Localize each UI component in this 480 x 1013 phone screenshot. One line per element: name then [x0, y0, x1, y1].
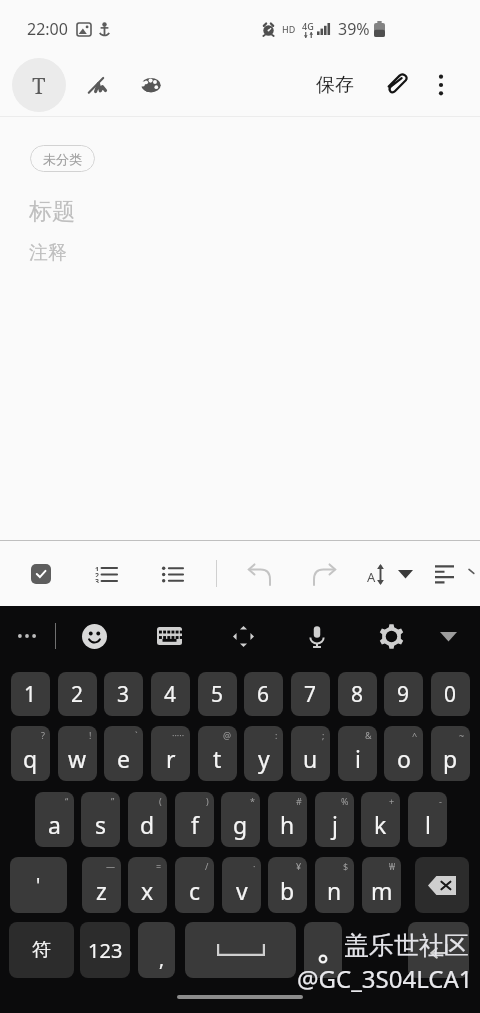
button[interactable]: +: [361, 792, 400, 847]
staticText: p: [443, 743, 458, 774]
button[interactable]: $: [315, 857, 354, 913]
button[interactable]: ”: [81, 792, 120, 847]
button[interactable]: Font size: [358, 554, 394, 594]
button[interactable]: (: [128, 792, 167, 847]
staticText: ₩: [389, 860, 396, 872]
button[interactable]: Numbers: [80, 922, 130, 978]
button[interactable]: 6: [244, 672, 283, 716]
staticText: #: [296, 795, 302, 807]
button[interactable]: *: [221, 792, 260, 847]
button[interactable]: Comma: [138, 922, 175, 978]
button[interactable]: 4: [151, 672, 190, 716]
button[interactable]: 0: [431, 672, 470, 716]
button[interactable]: Redo: [304, 554, 344, 594]
button[interactable]: Text mode: [12, 58, 66, 112]
staticText: v: [236, 875, 248, 906]
button[interactable]: :: [244, 726, 283, 781]
button[interactable]: &: [338, 726, 377, 781]
button[interactable]: Text style options: [389, 558, 421, 590]
button[interactable]: ): [175, 792, 214, 847]
button[interactable]: -: [408, 792, 447, 847]
button[interactable]: Voice input: [295, 614, 339, 658]
staticText: u: [303, 743, 318, 774]
staticText: ): [206, 795, 209, 807]
button[interactable]: ¥: [268, 857, 307, 913]
staticText: j: [332, 809, 338, 840]
staticText: ¥: [296, 860, 302, 872]
button[interactable]: /: [175, 857, 214, 913]
staticText: m: [371, 875, 393, 906]
staticText: 2: [95, 571, 100, 577]
button[interactable]: More options: [419, 63, 463, 107]
button[interactable]: `: [104, 726, 143, 781]
button[interactable]: Undo: [239, 554, 279, 594]
button[interactable]: 9: [384, 672, 423, 716]
button[interactable]: %: [315, 792, 354, 847]
button[interactable]: Hide keyboard: [426, 614, 470, 658]
button[interactable]: 3: [104, 672, 143, 716]
button[interactable]: ₩: [362, 857, 401, 913]
button[interactable]: Numbered list: [86, 554, 126, 594]
button[interactable]: Keyboard settings: [369, 614, 413, 658]
staticText: 注释: [29, 241, 67, 265]
button[interactable]: 2: [58, 672, 97, 716]
button[interactable]: Bulleted list: [152, 554, 192, 594]
button[interactable]: =: [128, 857, 167, 913]
staticText: $: [343, 860, 349, 872]
staticText: —: [106, 860, 116, 872]
staticText: :: [275, 729, 278, 741]
button[interactable]: Checklist: [21, 554, 61, 594]
button[interactable]: “: [35, 792, 74, 847]
button[interactable]: 5: [198, 672, 237, 716]
button[interactable]: Space: [185, 922, 296, 978]
staticText: b: [280, 875, 295, 906]
staticText: 保存: [316, 73, 354, 97]
staticText: 6: [257, 680, 270, 709]
button[interactable]: ?: [11, 726, 50, 781]
staticText: !: [89, 729, 92, 741]
button[interactable]: !: [58, 726, 97, 781]
button[interactable]: ^: [384, 726, 423, 781]
staticText: @GC_3S04LCA1: [297, 962, 473, 995]
staticText: ”: [111, 795, 115, 807]
staticText: y: [258, 743, 270, 774]
button[interactable]: 7: [291, 672, 330, 716]
staticText: /: [205, 860, 209, 872]
staticText: d: [140, 809, 155, 840]
button[interactable]: ·····: [151, 726, 190, 781]
staticText: w: [68, 743, 87, 774]
button[interactable]: Attach file: [376, 63, 420, 107]
staticText: 未分类: [43, 151, 82, 167]
button[interactable]: Period: [304, 922, 342, 978]
button[interactable]: Symbols: [9, 922, 74, 978]
button[interactable]: Drawing: [129, 63, 173, 107]
button[interactable]: Alignment: [424, 554, 464, 594]
button[interactable]: ~: [431, 726, 470, 781]
staticText: 8: [351, 680, 364, 709]
staticText: l: [425, 809, 431, 840]
staticText: 盖乐世社区: [344, 930, 469, 961]
button[interactable]: #: [268, 792, 307, 847]
button[interactable]: ;: [291, 726, 330, 781]
button[interactable]: Move keyboard: [221, 614, 265, 658]
staticText: 123: [88, 937, 123, 964]
staticText: ,: [159, 946, 165, 972]
button[interactable]: Keyboard layout: [147, 614, 191, 658]
button[interactable]: 1: [11, 672, 50, 716]
button[interactable]: Handwriting: [75, 63, 119, 107]
staticText: +: [389, 795, 395, 807]
button[interactable]: ·: [222, 857, 261, 913]
staticText: T: [32, 70, 46, 100]
button[interactable]: @: [198, 726, 237, 781]
button[interactable]: Shift: [10, 857, 67, 913]
button[interactable]: More options: [5, 614, 49, 658]
button[interactable]: 未分类: [30, 145, 95, 172]
button[interactable]: Emoji: [72, 614, 116, 658]
button[interactable]: 8: [338, 672, 377, 716]
button[interactable]: —: [82, 857, 121, 913]
button[interactable]: Backspace: [415, 857, 469, 913]
staticText: ·····: [172, 729, 185, 741]
button[interactable]: Enter: [408, 922, 469, 978]
button[interactable]: 保存: [308, 67, 362, 103]
staticText: h: [280, 809, 295, 840]
